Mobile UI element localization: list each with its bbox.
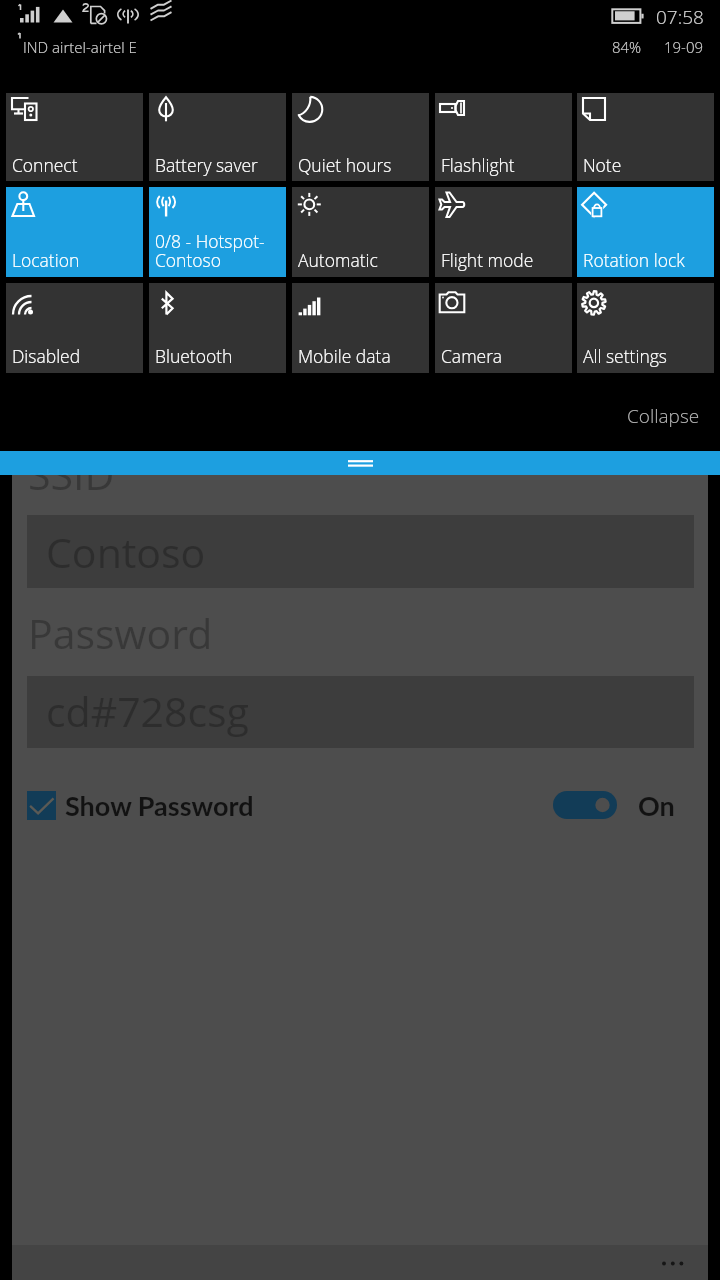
staticText: 0/8 - Hotspot- Contoso bbox=[155, 229, 265, 272]
button[interactable]: Note bbox=[577, 93, 714, 181]
staticText: IND airtel-airtel E bbox=[23, 37, 137, 57]
staticText: Flight mode bbox=[441, 248, 534, 272]
button[interactable]: All settings bbox=[577, 283, 714, 373]
staticText: Rotation lock bbox=[583, 248, 685, 272]
staticText: Location bbox=[12, 248, 80, 272]
staticText: cd#728csg bbox=[46, 683, 249, 739]
button[interactable]: Flight mode bbox=[435, 187, 572, 277]
button[interactable]: Bluetooth bbox=[149, 283, 286, 373]
button[interactable]: Disabled bbox=[6, 283, 143, 373]
staticText: Automatic bbox=[298, 248, 378, 272]
staticText: 07:58 bbox=[656, 4, 704, 30]
staticText: Collapse bbox=[627, 403, 700, 429]
button[interactable]: Location bbox=[6, 187, 143, 277]
staticText: 19-09 bbox=[664, 37, 704, 57]
button[interactable]: Camera bbox=[435, 283, 572, 373]
button[interactable]: 0/8 - Hotspot- bbox=[149, 187, 286, 277]
button[interactable]: Connect bbox=[6, 93, 143, 181]
staticText: Connect bbox=[12, 153, 78, 177]
staticText: Quiet hours bbox=[298, 153, 392, 177]
staticText: SSID bbox=[28, 451, 115, 502]
staticText: Password bbox=[28, 605, 213, 661]
staticText: 84% bbox=[612, 37, 642, 57]
staticText: Flashlight bbox=[441, 153, 515, 177]
staticText: On bbox=[638, 789, 675, 821]
button[interactable]: On bbox=[553, 781, 654, 829]
button[interactable]: Automatic bbox=[292, 187, 429, 277]
button[interactable]: Collapse bbox=[617, 396, 710, 436]
button[interactable]: Flashlight bbox=[435, 93, 572, 181]
button[interactable]: Show Password bbox=[23, 781, 241, 829]
staticText: Mobile data bbox=[298, 344, 391, 368]
button[interactable]: Battery saver bbox=[149, 93, 286, 181]
button[interactable]: Collapse action center bbox=[0, 451, 720, 475]
staticText: Note bbox=[583, 153, 622, 177]
button[interactable]: Rotation lock bbox=[577, 187, 714, 277]
staticText: Bluetooth bbox=[155, 344, 233, 368]
button[interactable]: Mobile data bbox=[292, 283, 429, 373]
button[interactable]: Quiet hours bbox=[292, 93, 429, 181]
staticText: Show Password bbox=[65, 789, 254, 821]
staticText: Battery saver bbox=[155, 153, 258, 177]
staticText: Disabled bbox=[12, 344, 81, 368]
staticText: Contoso bbox=[46, 524, 206, 580]
staticText: All settings bbox=[583, 344, 668, 368]
staticText: Camera bbox=[441, 344, 502, 368]
button[interactable]: More options bbox=[642, 1245, 708, 1280]
